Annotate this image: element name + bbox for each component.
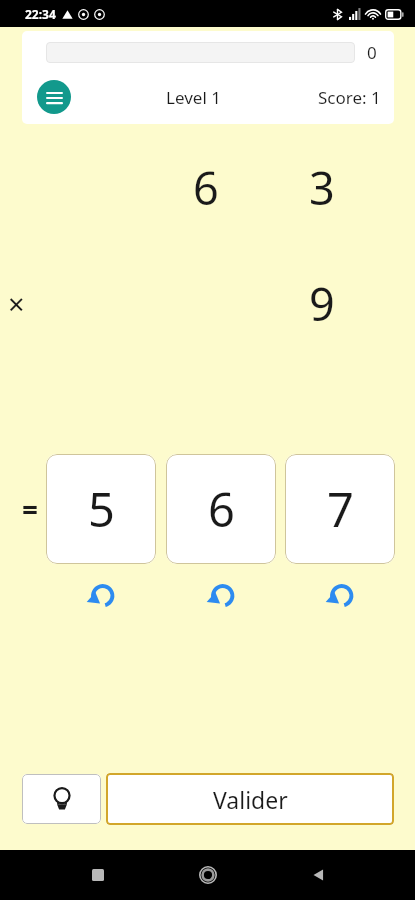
button[interactable]: 6: [166, 454, 276, 564]
staticText: Valider: [213, 784, 288, 815]
button[interactable]: Recent apps: [75, 852, 121, 898]
button[interactable]: Valider: [106, 773, 394, 825]
staticText: 5: [88, 477, 115, 541]
button[interactable]: Undo digit 3: [285, 570, 395, 616]
button[interactable]: 7: [285, 454, 395, 564]
staticText: 6: [193, 157, 219, 218]
staticText: 9: [309, 273, 335, 334]
button[interactable]: Undo digit 2: [166, 570, 276, 616]
staticText: 7: [327, 477, 354, 541]
staticText: 0: [367, 41, 377, 64]
button[interactable]: Hint: [22, 774, 101, 824]
staticText: Score: 1: [318, 86, 381, 109]
button[interactable]: Menu: [37, 80, 71, 114]
staticText: 22:34: [25, 6, 56, 22]
staticText: 3: [309, 157, 335, 218]
staticText: ×: [8, 284, 25, 323]
staticText: =: [22, 490, 39, 528]
staticText: Level 1: [166, 86, 221, 109]
staticText: 6: [208, 477, 235, 541]
button[interactable]: Undo digit 1: [46, 570, 156, 616]
button[interactable]: Back: [295, 852, 341, 898]
button[interactable]: 5: [46, 454, 156, 564]
button[interactable]: Home: [185, 852, 231, 898]
